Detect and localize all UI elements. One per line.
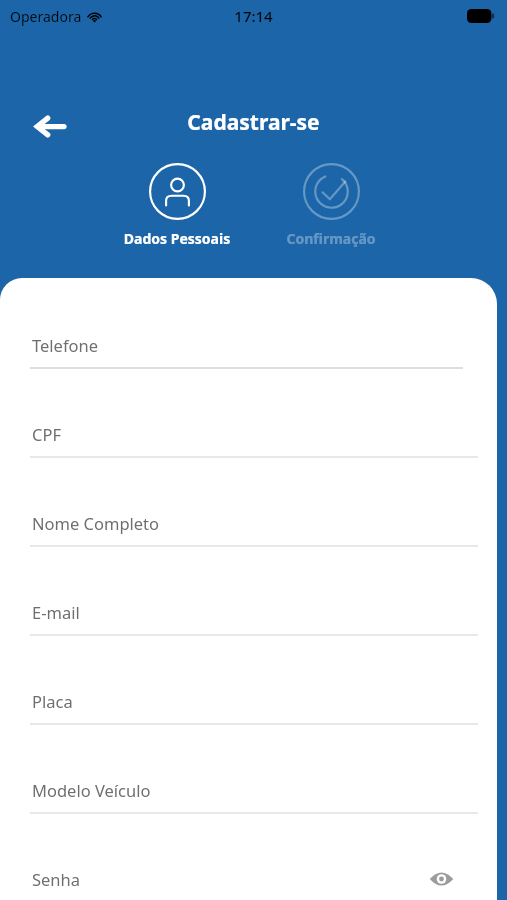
staticText: Senha xyxy=(32,868,81,890)
button[interactable]: Voltar xyxy=(27,103,73,149)
button[interactable]: E-mail xyxy=(0,547,497,636)
staticText: Operadora xyxy=(10,7,82,26)
staticText: Telefone xyxy=(32,334,99,356)
staticText: Placa xyxy=(32,690,73,712)
button[interactable]: Modelo Veículo xyxy=(0,725,497,814)
staticText: Modelo Veículo xyxy=(32,779,151,801)
staticText: Dados Pessoais xyxy=(100,229,254,248)
button[interactable]: Senha xyxy=(0,814,497,890)
staticText: Cadastrar-se xyxy=(0,108,507,137)
button[interactable]: Placa xyxy=(0,636,497,725)
staticText: Confirmação xyxy=(254,229,408,248)
staticText: 17:14 xyxy=(234,6,273,26)
staticText: E-mail xyxy=(32,601,80,623)
staticText: Nome Completo xyxy=(32,512,160,534)
staticText: CPF xyxy=(32,423,61,445)
button[interactable]: Dados Pessoais xyxy=(100,163,254,248)
button[interactable]: Confirmação xyxy=(254,163,408,248)
button[interactable]: CPF xyxy=(0,369,497,458)
button[interactable]: Mostrar senha xyxy=(425,867,457,890)
button[interactable]: Nome Completo xyxy=(0,458,497,547)
button[interactable]: Telefone xyxy=(0,278,497,369)
